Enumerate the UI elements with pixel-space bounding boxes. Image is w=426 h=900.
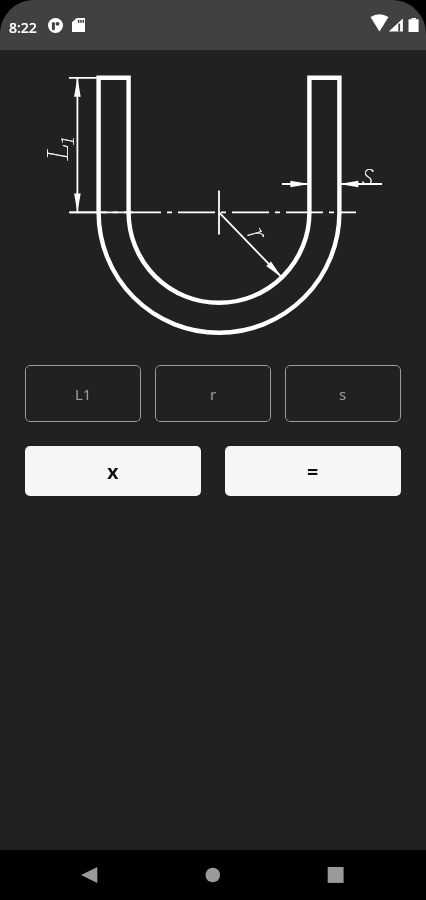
staticText: s (339, 384, 347, 404)
staticText: 8:22 (9, 18, 37, 37)
button[interactable]: Recent apps (306, 850, 366, 900)
staticText: x (107, 458, 119, 485)
staticText: r (245, 218, 279, 244)
button[interactable]: L1 (25, 365, 141, 422)
staticText: r (210, 384, 217, 404)
staticText: L₁ (36, 134, 79, 161)
button[interactable]: r (155, 365, 271, 422)
staticText: s (361, 151, 374, 185)
button[interactable]: s (285, 365, 401, 422)
button[interactable]: Home (183, 850, 243, 900)
button[interactable]: Back (59, 850, 119, 900)
staticText: = (307, 458, 319, 485)
staticText: L1 (75, 384, 92, 404)
button[interactable]: = (225, 446, 401, 496)
button[interactable]: x (25, 446, 201, 496)
